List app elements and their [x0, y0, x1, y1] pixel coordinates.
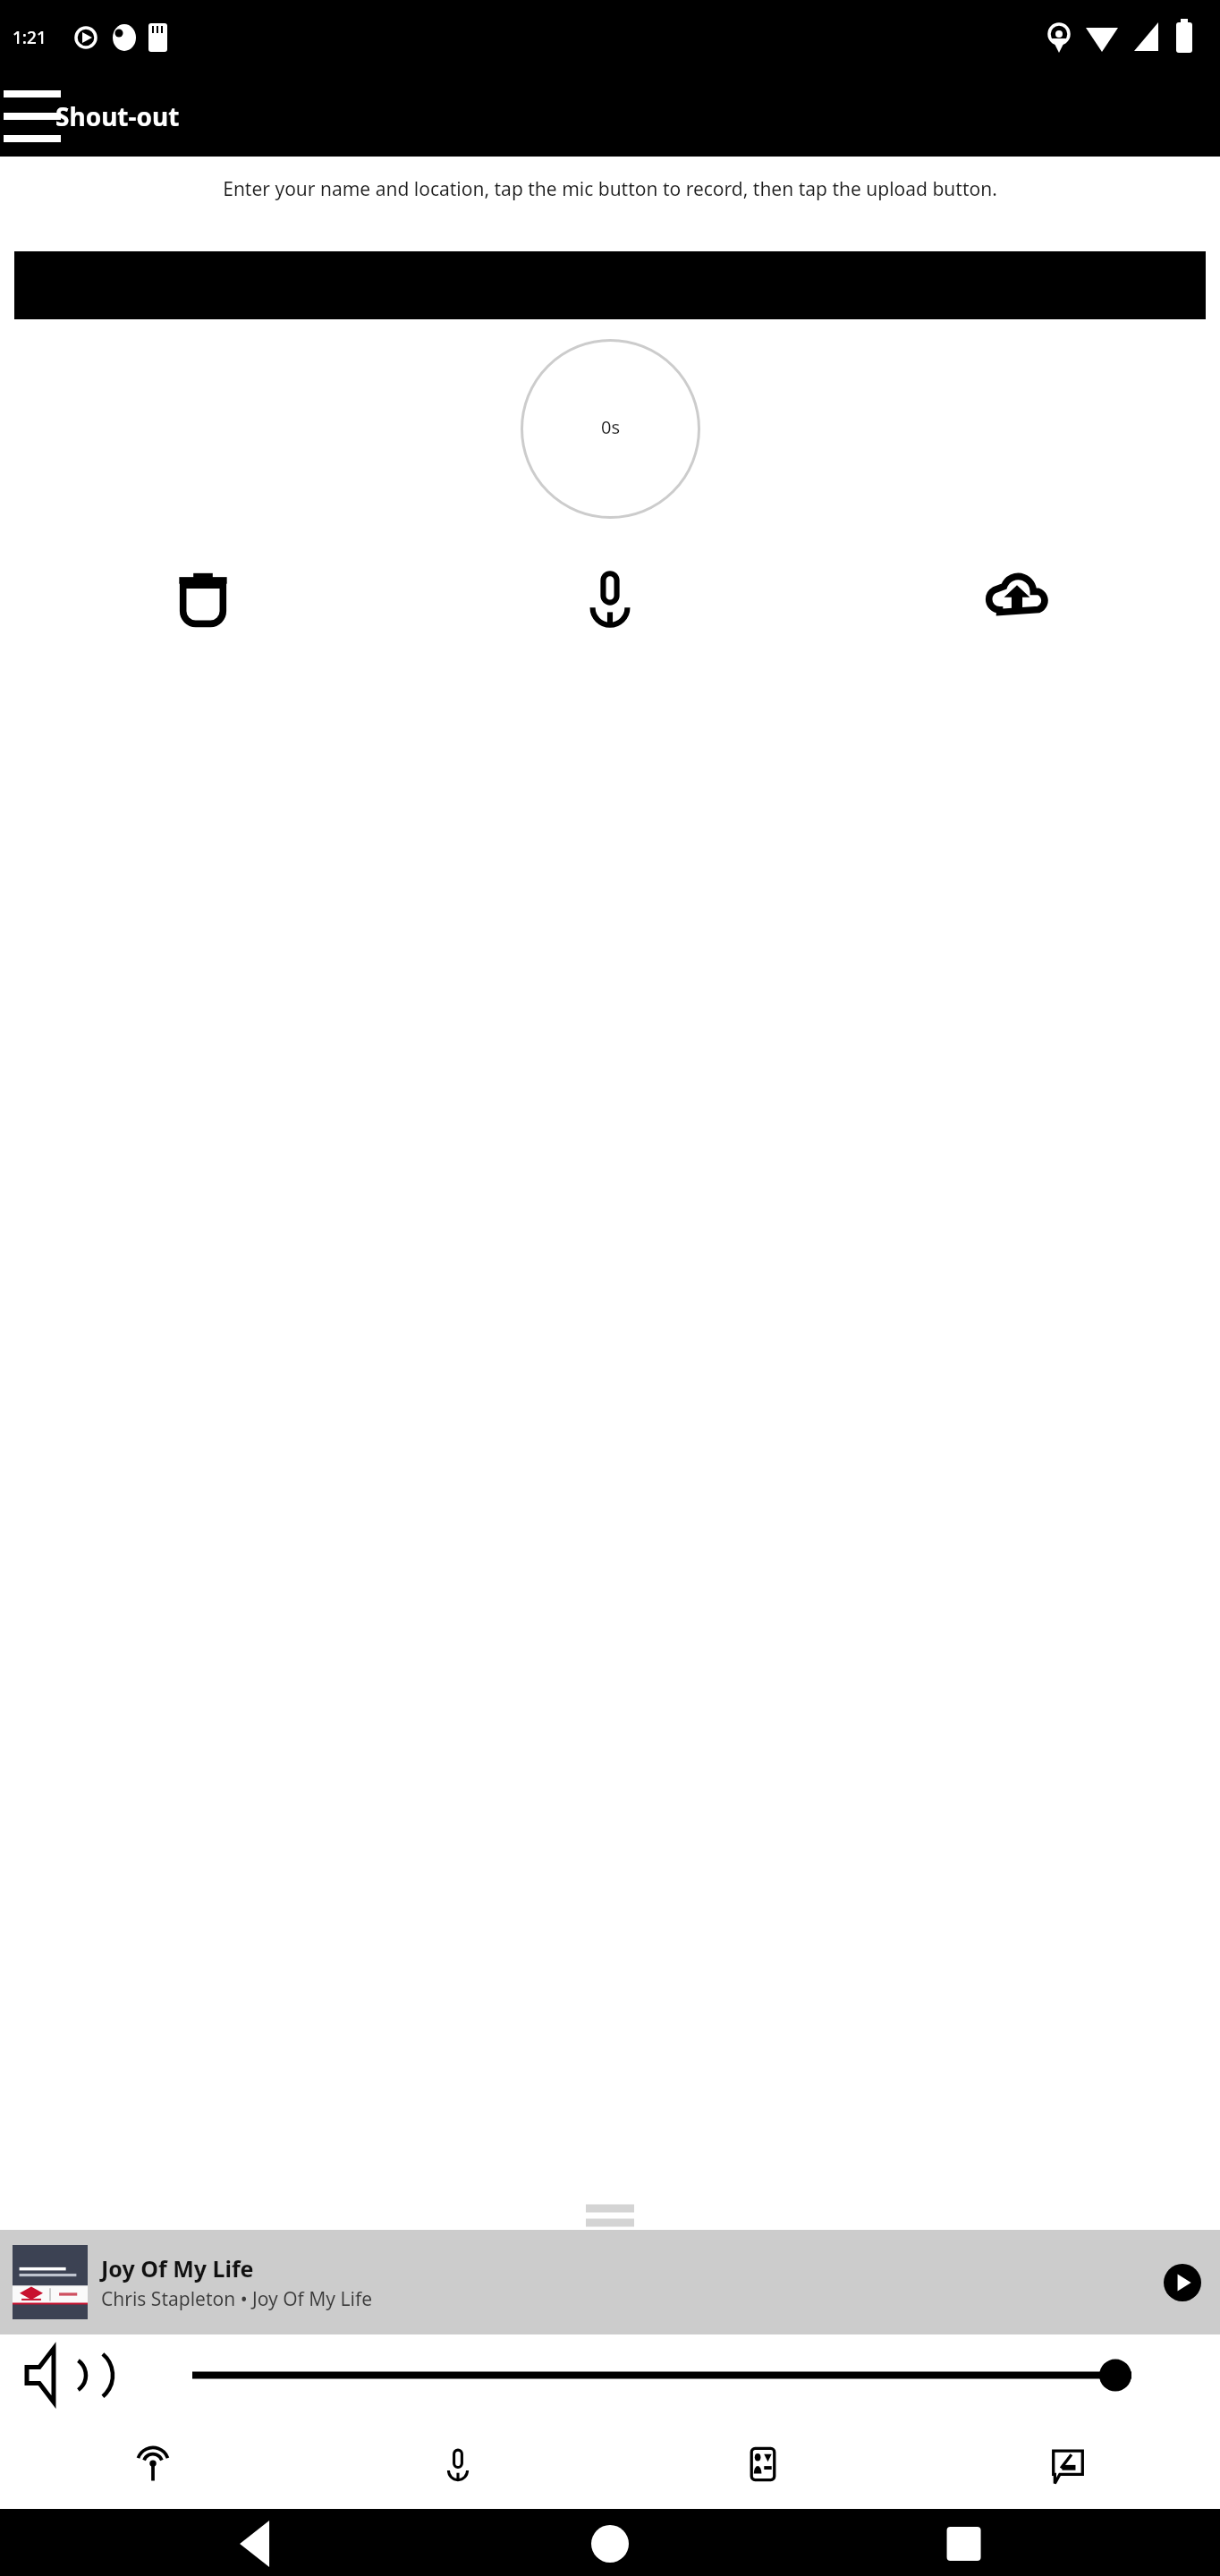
- button[interactable]: Upload recording: [979, 562, 1055, 637]
- button[interactable]: Joy Of My Life: [0, 2230, 1220, 2334]
- staticText: Shout-out: [55, 99, 180, 133]
- button[interactable]: 0s: [521, 339, 700, 519]
- button[interactable]: Contact: [610, 2419, 915, 2509]
- staticText: Joy Of My Life: [101, 2253, 254, 2284]
- staticText: 1:21: [13, 26, 47, 49]
- button[interactable]: Play: [1157, 2258, 1207, 2308]
- staticText: Enter your name and location, tap the mi…: [16, 176, 1204, 202]
- button[interactable]: Record with microphone: [572, 562, 648, 637]
- button[interactable]: [14, 251, 1206, 319]
- button[interactable]: Feedback: [915, 2419, 1220, 2509]
- button[interactable]: Delete recording: [165, 562, 241, 637]
- button[interactable]: Open navigation menu: [5, 89, 59, 143]
- button[interactable]: Broadcast: [0, 2419, 305, 2509]
- staticText: 0s: [601, 415, 621, 439]
- button[interactable]: Microphone: [305, 2419, 610, 2509]
- staticText: Chris Stapleton • Joy Of My Life: [101, 2286, 372, 2312]
